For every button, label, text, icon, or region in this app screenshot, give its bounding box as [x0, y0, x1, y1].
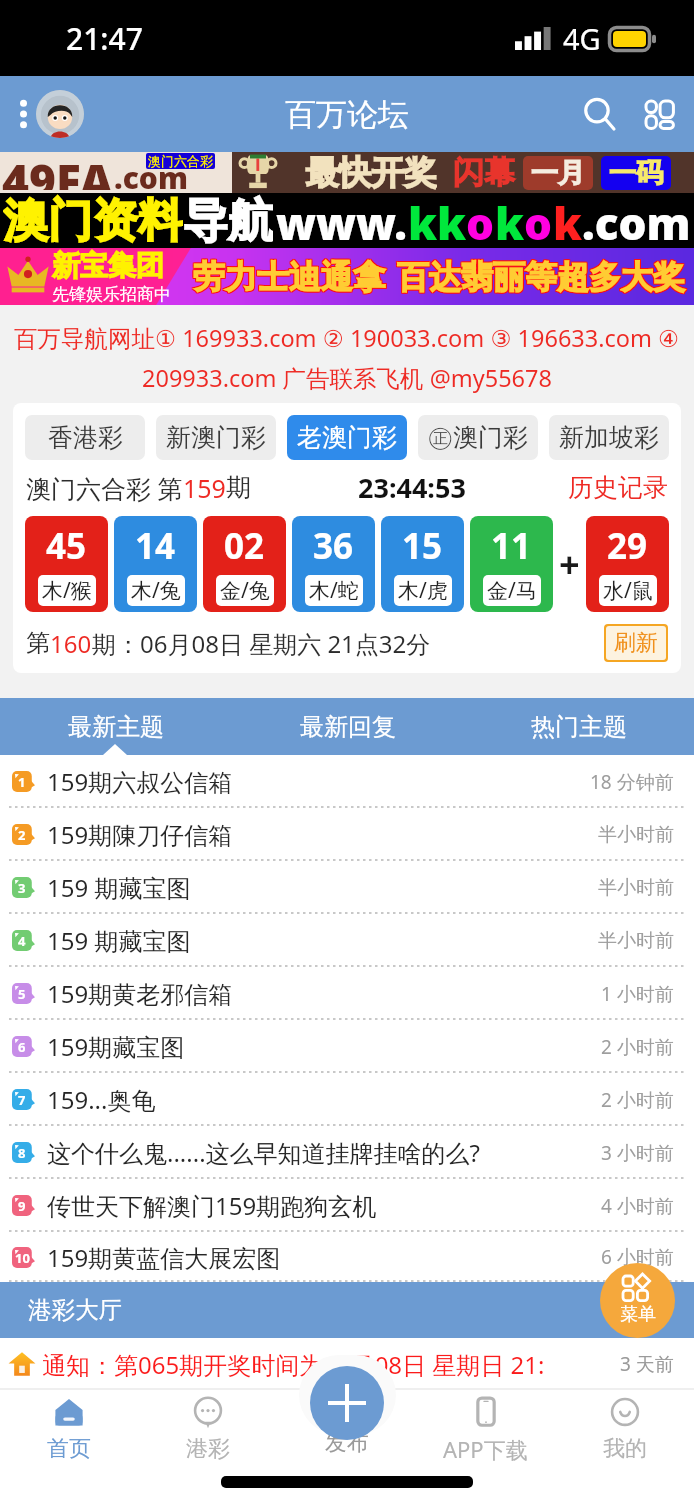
staticText: 百达翡丽等超多大奖 — [397, 258, 685, 298]
button[interactable]: Post — [310, 1366, 384, 1440]
staticText: 刷新 — [614, 629, 658, 657]
staticText: 百达翡丽等超多大奖 — [398, 256, 686, 296]
button[interactable]: 7 — [0, 1073, 694, 1126]
staticText: 11 — [491, 522, 532, 570]
staticText: 8 — [18, 1144, 26, 1162]
staticText: + — [559, 540, 580, 589]
button[interactable]: APP下载 — [416, 1390, 555, 1470]
button[interactable]: 发布 — [277, 1390, 416, 1470]
staticText: 木/猴 — [42, 576, 92, 605]
button[interactable]: More options — [10, 94, 36, 134]
button[interactable]: 老澳门彩 — [287, 415, 407, 460]
staticText: 港彩 — [186, 1435, 230, 1463]
staticText: 23:44:53 — [358, 469, 466, 506]
button[interactable]: 新加坡彩 — [549, 415, 669, 460]
staticText: 5 — [18, 985, 26, 1003]
button[interactable]: Grid menu — [633, 88, 685, 140]
staticText: 4 小时前 — [601, 1193, 674, 1219]
button[interactable]: 首页 — [0, 1390, 138, 1470]
button[interactable]: 49FA — [0, 152, 694, 193]
staticText: 02 — [224, 522, 265, 570]
staticText: 新宝集团 — [52, 248, 164, 283]
staticText: 3 小时前 — [601, 1140, 674, 1166]
button[interactable]: 最新主题 — [0, 698, 232, 755]
button[interactable]: 3 — [0, 861, 694, 914]
staticText: 这个什么鬼......这么早知道挂牌挂啥的么? — [47, 1136, 481, 1169]
button[interactable]: ㊣澳门彩 — [418, 415, 538, 460]
button[interactable]: 我的 — [555, 1390, 694, 1470]
staticText: 新加坡彩 — [559, 422, 659, 453]
staticText: 1 — [18, 773, 26, 791]
button[interactable]: Search — [573, 88, 625, 140]
staticText: 159 期藏宝图 — [47, 924, 191, 957]
staticText: 160 — [50, 627, 92, 660]
button[interactable]: 最新回复 — [232, 698, 463, 755]
staticText: 半小时前 — [598, 876, 674, 900]
button[interactable]: 澳门资料 — [0, 193, 694, 248]
staticText: .com — [582, 193, 691, 248]
staticText: 劳力士迪通拿 — [192, 256, 384, 296]
staticText: 159...奥龟 — [47, 1083, 156, 1116]
staticText: 菜单 — [620, 1303, 656, 1326]
staticText: 百万导航网址① 169933.com ② 190033.com ③ 196633… — [14, 322, 680, 354]
staticText: 木/蛇 — [309, 576, 359, 605]
button[interactable]: 港彩 — [138, 1390, 277, 1470]
button[interactable]: 10 — [0, 1232, 694, 1282]
button[interactable]: 历史记录 — [568, 472, 668, 503]
staticText: 闪幕 — [453, 153, 515, 192]
staticText: 2 小时前 — [601, 1034, 674, 1060]
staticText: o — [466, 193, 495, 248]
staticText: 半小时前 — [598, 929, 674, 953]
button[interactable]: 刷新 — [604, 624, 668, 662]
button[interactable]: 新宝集团 — [0, 248, 694, 305]
staticText: 导航 — [183, 193, 273, 248]
staticText: 老澳门彩 — [297, 422, 397, 453]
staticText: 159 — [183, 471, 226, 505]
staticText: 6 — [18, 1038, 26, 1056]
staticText: 香港彩 — [48, 422, 123, 453]
staticText: k — [553, 193, 582, 248]
staticText: 澳门资料 — [3, 193, 183, 248]
staticText: 最新主题 — [68, 712, 164, 742]
staticText: 百达翡丽等超多大奖 — [397, 257, 685, 297]
staticText: 2 小时前 — [601, 1087, 674, 1113]
staticText: 期：06月08日 星期六 21点32分 — [92, 627, 431, 660]
button[interactable]: 6 — [0, 1020, 694, 1073]
staticText: 159 期藏宝图 — [47, 871, 191, 904]
button[interactable]: Profile — [36, 90, 84, 138]
staticText: 港彩大厅 — [28, 1295, 122, 1325]
button[interactable]: 香港彩 — [25, 415, 145, 460]
staticText: 先锋娱乐招商中 — [52, 284, 171, 305]
staticText: 劳力士迪通拿 — [193, 258, 385, 298]
staticText: 百万论坛 — [285, 95, 409, 134]
staticText: 百达翡丽等超多大奖 — [397, 256, 685, 296]
staticText: 百达翡丽等超多大奖 — [398, 258, 686, 298]
button[interactable]: 热门主题 — [463, 698, 694, 755]
staticText: www. — [276, 193, 408, 248]
button[interactable]: 8 — [0, 1126, 694, 1179]
staticText: 劳力士迪通拿 — [192, 258, 384, 298]
button[interactable]: 1 — [0, 755, 694, 808]
button[interactable]: Menu — [600, 1263, 675, 1338]
button[interactable]: 4 — [0, 914, 694, 967]
staticText: 209933.com 广告联系飞机 @my55678 — [142, 362, 552, 394]
staticText: 我的 — [603, 1435, 647, 1463]
staticText: 3 天前 — [620, 1351, 674, 1377]
staticText: 29 — [607, 522, 648, 570]
staticText: 最新回复 — [300, 712, 396, 742]
staticText: k — [495, 193, 524, 248]
staticText: 159期黄蓝信大展宏图 — [47, 1241, 281, 1274]
staticText: 159期六叔公信箱 — [47, 765, 233, 798]
button[interactable]: 新澳门彩 — [156, 415, 276, 460]
staticText: 一月 — [531, 156, 585, 190]
staticText: 第 — [26, 628, 50, 658]
staticText: 21:47 — [66, 18, 143, 59]
button[interactable]: 5 — [0, 967, 694, 1020]
staticText: 澳门六合彩 第 — [26, 471, 183, 505]
staticText: APP下载 — [443, 1434, 528, 1464]
button[interactable]: 9 — [0, 1179, 694, 1232]
button[interactable]: 2 — [0, 808, 694, 861]
staticText: 期 — [226, 472, 251, 503]
button[interactable]: 港彩大厅 — [0, 1282, 694, 1338]
staticText: kk — [408, 193, 466, 248]
